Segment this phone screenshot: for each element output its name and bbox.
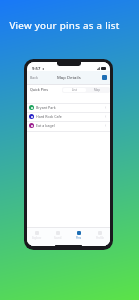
staticText: Saved — [54, 236, 62, 240]
button[interactable]: Back — [27, 73, 40, 82]
button[interactable]: Pins — [68, 228, 89, 242]
button[interactable]: List — [63, 88, 86, 92]
staticText: Explore — [32, 236, 42, 240]
staticText: List — [72, 88, 77, 92]
button[interactable]: Map — [86, 88, 109, 92]
button[interactable]: Eat a bagel — [27, 121, 110, 130]
staticText: Map Details — [57, 75, 81, 81]
staticText: Map — [94, 88, 101, 92]
staticText: Eat a bagel — [36, 123, 55, 128]
staticText: Pins — [76, 236, 82, 240]
button[interactable]: Hard Rock Cafe — [27, 112, 110, 121]
button[interactable]: Bryant Park — [27, 103, 110, 112]
button[interactable]: Explore — [27, 228, 47, 242]
staticText: Quick Pins — [30, 87, 48, 92]
button[interactable]: Profile — [89, 228, 110, 242]
button[interactable]: Saved — [47, 228, 68, 242]
staticText: Profile — [96, 236, 104, 240]
staticText: 9:57 — [32, 66, 41, 72]
staticText: Bryant Park — [36, 105, 56, 110]
staticText: View your pins as a list — [0, 19, 134, 32]
staticText: Hard Rock Cafe — [36, 114, 62, 119]
button[interactable]: Layers — [102, 75, 107, 80]
